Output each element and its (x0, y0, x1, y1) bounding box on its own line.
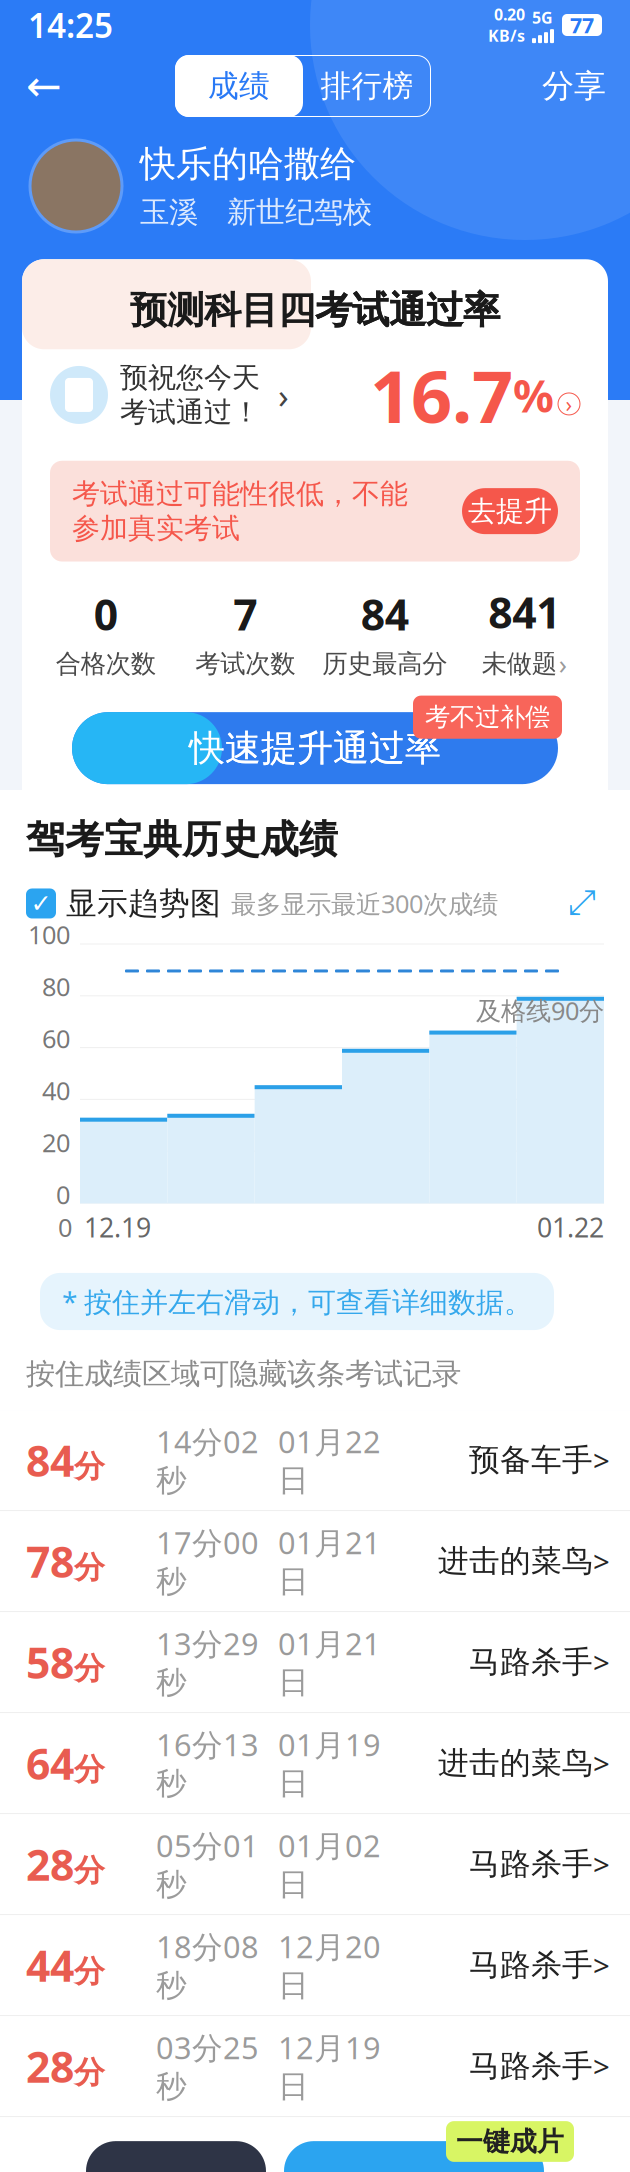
staticText: 5G (532, 7, 553, 28)
button[interactable]: 58 (0, 1612, 630, 1713)
button[interactable]: One tap video (284, 2141, 544, 2172)
staticText: 考试通过可能性很低，不能参加真实考试 (72, 477, 408, 545)
button[interactable]: 841 (454, 583, 594, 682)
staticText: 44 (26, 1937, 74, 1993)
button[interactable]: Expand chart (560, 881, 604, 925)
button[interactable]: 64 (0, 1713, 630, 1814)
staticText: 一键成片 (456, 2125, 564, 2158)
staticText: 进击的菜鸟 (438, 1542, 593, 1580)
staticText: 分 (74, 1448, 105, 1485)
button[interactable]: 28 (0, 2016, 630, 2117)
staticText: 合格次数 (56, 648, 156, 679)
staticText: 16分13秒 (156, 1724, 259, 1802)
staticText: 01月19日 (278, 1724, 381, 1802)
button[interactable]: 分享 (534, 58, 614, 114)
staticText: 100 (28, 917, 70, 951)
staticText: 64 (26, 1735, 74, 1791)
staticText: 预备车手 (469, 1441, 593, 1479)
staticText: KB/s (488, 25, 525, 46)
staticText: 841 (488, 583, 560, 640)
staticText: 7 (233, 586, 257, 642)
staticText: 预测科目四考试通过率 (130, 287, 500, 333)
staticText: ⤢ (568, 887, 596, 920)
staticText: 01月22日 (278, 1421, 381, 1499)
staticText: 分 (74, 1953, 105, 1990)
staticText: 0 (56, 1177, 70, 1211)
button[interactable]: 成绩 (175, 55, 303, 117)
staticText: 成绩 (208, 67, 270, 105)
staticText: › (559, 646, 567, 682)
staticText: 20 (42, 1125, 70, 1159)
staticText: 考不过补偿 (425, 702, 550, 733)
staticText: > (593, 1744, 610, 1783)
staticText: 77 (570, 11, 594, 39)
staticText: 马路杀手 (469, 1643, 593, 1681)
staticText: 0 (58, 1210, 72, 1244)
staticText: 01月21日 (278, 1522, 381, 1600)
staticText: 14:25 (28, 3, 113, 47)
button[interactable]: 快速提升通过率 (22, 712, 608, 784)
staticText: 78 (26, 1533, 74, 1589)
staticText: 14分02秒 (156, 1421, 259, 1499)
staticText: 最多显示最近300次成绩 (231, 887, 498, 920)
staticText: 84 (361, 586, 409, 642)
staticText: % (513, 365, 554, 425)
staticText: > (593, 1441, 610, 1480)
staticText: 0 (94, 586, 118, 642)
button[interactable]: ✓ (26, 885, 221, 922)
staticText: 分 (74, 1751, 105, 1788)
staticText: 58 (26, 1634, 74, 1690)
button[interactable]: 预祝您今天考试通过！ (22, 333, 608, 443)
staticText: 05分01秒 (156, 1825, 259, 1903)
staticText: 12月20日 (278, 1926, 381, 2004)
button[interactable]: Secondary action (86, 2141, 266, 2172)
button[interactable]: 排行榜 (303, 55, 431, 117)
staticText: 01月02日 (278, 1825, 381, 1903)
staticText: 分享 (542, 66, 606, 106)
button[interactable]: 44 (0, 1915, 630, 2016)
button[interactable]: 84 (0, 1410, 630, 1511)
staticText: 01月21日 (278, 1623, 381, 1701)
button[interactable]: 28 (0, 1814, 630, 1915)
staticText: 分 (74, 1650, 105, 1687)
staticText: 03分25秒 (156, 2027, 259, 2105)
staticText: › (278, 372, 289, 418)
staticText: 预测科目四考试通过率 (130, 287, 500, 333)
staticText: 历史最高分 (322, 648, 447, 679)
staticText: > (593, 1542, 610, 1581)
staticText: 01.22 (537, 1209, 604, 1245)
staticText: 分 (74, 2054, 105, 2091)
staticText: 马路杀手 (469, 1845, 593, 1883)
staticText: 显示趋势图 (66, 885, 221, 922)
staticText: > (593, 1946, 610, 1985)
staticText: 17分00秒 (156, 1522, 259, 1600)
staticText: 60 (42, 1021, 70, 1055)
staticText: 马路杀手 (469, 2047, 593, 2085)
staticText: 12月19日 (278, 2027, 381, 2105)
staticText: 及格线90分 (476, 993, 604, 1027)
staticText: 0.20 (494, 4, 525, 25)
staticText: 快速提升通过率 (189, 726, 441, 770)
staticText: 驾考宝典历史成绩 (26, 816, 338, 863)
staticText: › (565, 390, 572, 418)
staticText: 马路杀手 (469, 1946, 593, 1984)
staticText: ← (26, 62, 62, 110)
button[interactable]: 去提升 (462, 488, 558, 534)
staticText: 玉溪 新世纪驾校 (140, 194, 372, 230)
button[interactable]: 78 (0, 1511, 630, 1612)
staticText: 28 (26, 1836, 74, 1892)
button[interactable]: Back (16, 58, 72, 114)
staticText: 快速提升通过率 (189, 726, 441, 770)
staticText: 28 (26, 2038, 74, 2094)
staticText: 考试次数 (195, 648, 295, 679)
staticText: 快乐的哈撒给 (140, 142, 356, 186)
staticText: 40 (42, 1073, 70, 1107)
staticText: 排行榜 (320, 67, 413, 105)
staticText: 13分29秒 (156, 1623, 259, 1701)
staticText: 84 (26, 1432, 74, 1488)
staticText: ✓ (30, 889, 51, 918)
staticText: 分 (74, 1852, 105, 1889)
staticText: 进击的菜鸟 (438, 1744, 593, 1782)
staticText: 16.7 (370, 347, 513, 443)
staticText: 80 (42, 969, 70, 1003)
